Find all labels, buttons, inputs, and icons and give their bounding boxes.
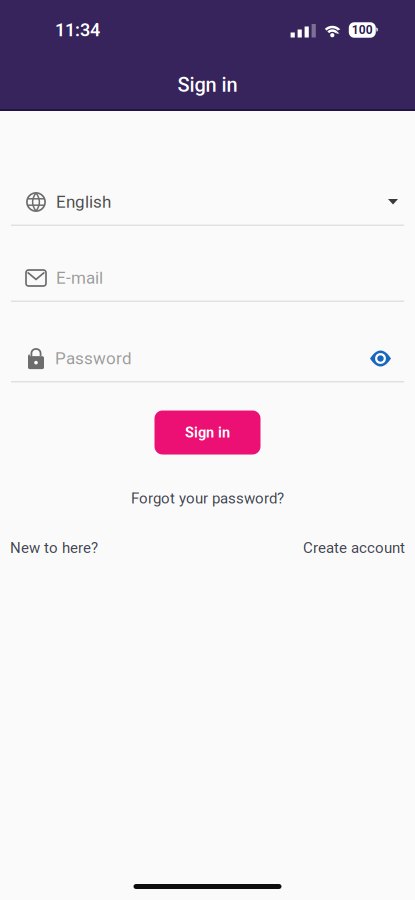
- staticText: New to here?: [10, 539, 98, 557]
- staticText: Forgot your password?: [131, 489, 284, 507]
- staticText: 100: [352, 23, 373, 37]
- staticText: Sign in: [177, 73, 237, 97]
- staticText: E-mail: [56, 268, 103, 288]
- button[interactable]: Sign in: [154, 410, 260, 454]
- button[interactable]: E-mail: [11, 258, 404, 302]
- staticText: Password: [55, 348, 132, 368]
- button[interactable]: Password: [11, 338, 404, 382]
- button[interactable]: Language: English: [11, 182, 404, 226]
- staticText: Sign in: [185, 424, 230, 441]
- staticText: English: [56, 192, 111, 212]
- staticText: Create account: [303, 539, 405, 557]
- button[interactable]: Create account: [303, 539, 405, 557]
- staticText: 11:34: [55, 19, 100, 41]
- button[interactable]: Forgot your password?: [131, 489, 284, 507]
- button[interactable]: Show password: [370, 349, 391, 368]
